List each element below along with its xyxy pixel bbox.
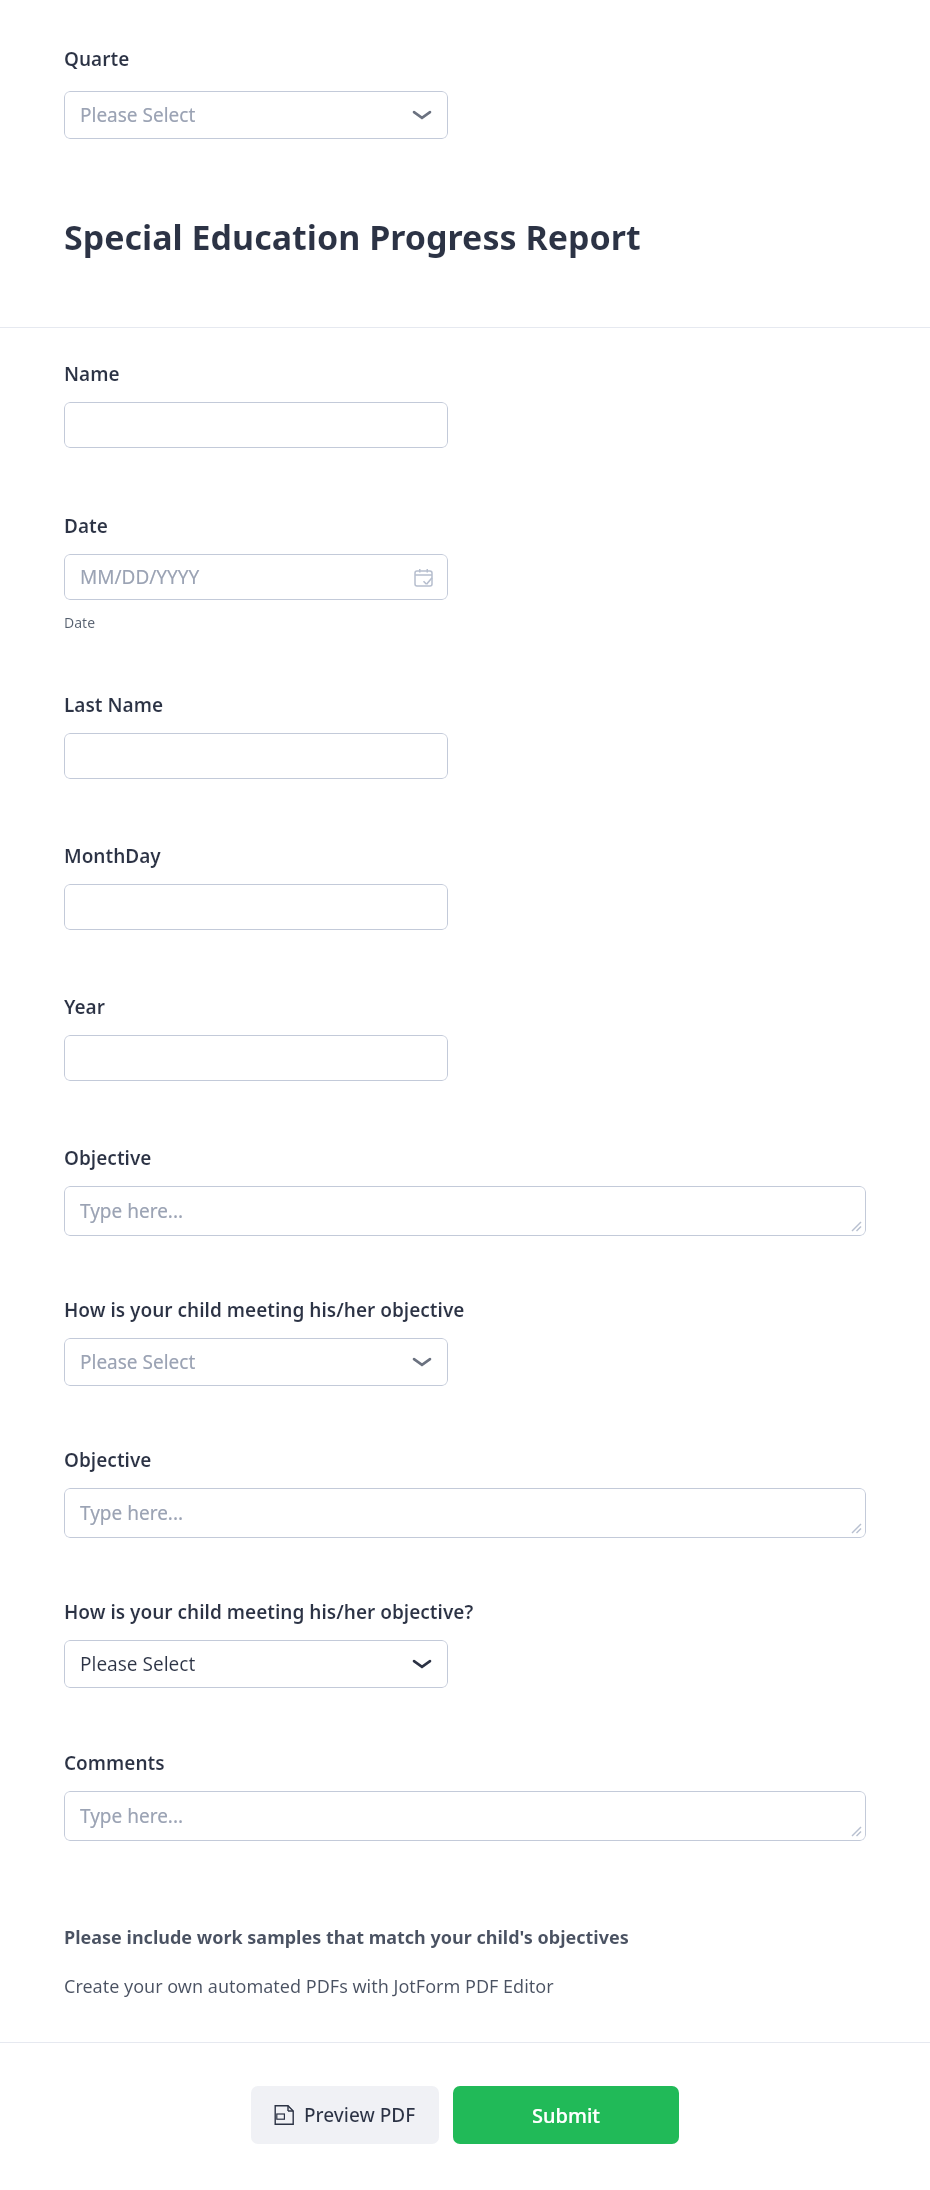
- staticText: Quarte: [64, 46, 130, 72]
- staticText: How is your child meeting his/her object…: [64, 1297, 465, 1323]
- staticText: Date: [64, 613, 96, 632]
- staticText: Year: [64, 994, 105, 1020]
- button[interactable]: Preview PDF: [251, 2086, 439, 2144]
- staticText: MonthDay: [64, 843, 161, 869]
- staticText: Type here...: [80, 1803, 184, 1829]
- staticText: Please Select: [80, 1349, 196, 1375]
- staticText: Preview PDF: [304, 2102, 416, 2128]
- button[interactable]: Type here...: [64, 1186, 866, 1236]
- staticText: Please include work samples that match y…: [64, 1925, 629, 1950]
- button[interactable]: Please Select: [64, 91, 448, 139]
- staticText: Name: [64, 361, 120, 387]
- button[interactable]: [64, 884, 448, 930]
- button[interactable]: Type here...: [64, 1488, 866, 1538]
- staticText: MM/DD/YYYY: [80, 564, 200, 590]
- button[interactable]: Please Select: [64, 1640, 448, 1688]
- other: Pick date: [415, 569, 432, 586]
- staticText: Type here...: [80, 1500, 184, 1526]
- button[interactable]: MM/DD/YYYY: [64, 554, 448, 600]
- staticText: Comments: [64, 1750, 165, 1776]
- staticText: Create your own automated PDFs with JotF…: [64, 1974, 554, 1999]
- staticText: Date: [64, 513, 108, 539]
- button[interactable]: Submit: [453, 2086, 679, 2144]
- staticText: Submit: [532, 2102, 600, 2129]
- button[interactable]: Type here...: [64, 1791, 866, 1841]
- button[interactable]: [64, 402, 448, 448]
- button[interactable]: [64, 733, 448, 779]
- staticText: Please Select: [80, 1651, 196, 1677]
- staticText: Objective: [64, 1447, 152, 1473]
- staticText: Last Name: [64, 692, 164, 718]
- staticText: Please Select: [80, 102, 196, 128]
- button[interactable]: Please Select: [64, 1338, 448, 1386]
- staticText: How is your child meeting his/her object…: [64, 1599, 474, 1625]
- button[interactable]: [64, 1035, 448, 1081]
- staticText: Objective: [64, 1145, 152, 1171]
- staticText: Type here...: [80, 1198, 184, 1224]
- staticText: Special Education Progress Report: [64, 214, 641, 260]
